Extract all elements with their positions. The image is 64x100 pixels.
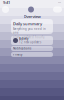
staticText: ···: [58, 0, 61, 5]
staticText: Activity: [19, 37, 28, 40]
button[interactable]: Activity: [11, 36, 53, 45]
staticText: Everything you need in one: [13, 27, 46, 34]
button[interactable]: Notifications: [11, 46, 53, 51]
staticText: Notifications: [13, 47, 31, 50]
staticText: 12 new updates: [19, 40, 41, 44]
staticText: Overview: [23, 14, 40, 19]
staticText: 9:41: [3, 0, 10, 5]
staticText: Privacy: [13, 53, 22, 56]
button[interactable]: Back: [2, 6, 9, 13]
button[interactable]: Menu: [53, 6, 62, 12]
staticText: place, updated hourly.: [13, 35, 45, 39]
button[interactable]: Privacy: [11, 52, 53, 57]
staticText: Daily summary: [13, 21, 42, 26]
